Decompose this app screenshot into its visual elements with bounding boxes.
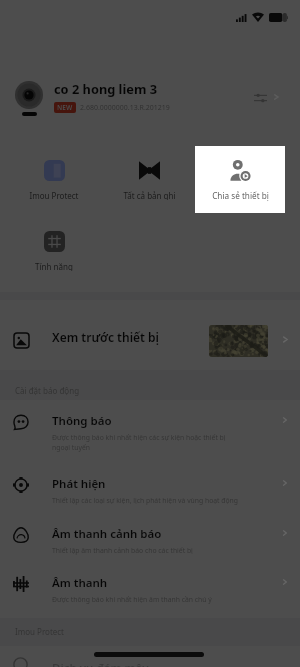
button[interactable]: Âm thanh cảnh báo <box>0 518 300 568</box>
button[interactable]: Xem trước thiết bị <box>0 316 300 364</box>
staticText: Thông báo <box>52 413 112 429</box>
button[interactable]: Âm thanh <box>276 573 294 591</box>
staticText: Tính năng <box>35 261 73 271</box>
button[interactable]: Phát hiện <box>276 474 294 492</box>
button[interactable]: Device settings <box>250 88 270 108</box>
staticText: Âm thanh cảnh báo <box>52 526 162 542</box>
staticText: Được thông báo khi nhất hiện các sự kiện… <box>52 433 226 452</box>
button[interactable]: Tính năng <box>9 219 99 271</box>
button[interactable]: Thông báo <box>0 405 300 467</box>
staticText: Tất cả bản ghi <box>123 190 176 200</box>
button[interactable] <box>0 646 300 667</box>
staticText: Phát hiện <box>52 476 106 492</box>
button[interactable]: Âm thanh <box>0 567 300 617</box>
button[interactable]: Chia sẻ thiết bị <box>195 146 285 213</box>
button[interactable]: Phát hiện <box>0 468 300 518</box>
button[interactable]: Imou Protect <box>9 148 99 200</box>
staticText: Âm thanh <box>52 575 108 591</box>
button[interactable]: Open preview <box>276 330 294 348</box>
staticText: Imou Protect <box>15 626 65 637</box>
staticText: Thiết lập âm thanh cảnh báo cho các thiế… <box>52 546 193 555</box>
staticText: Cài đặt báo động <box>15 385 80 396</box>
staticText: Thiết lập các loại sự kiện, lịch phát hi… <box>52 496 238 505</box>
staticText: Imou Protect <box>29 190 79 200</box>
staticText: 2.680.0000000.13.R.201219 <box>80 103 170 113</box>
staticText: Được thông báo khi nhất hiện âm thanh cầ… <box>52 595 212 604</box>
button[interactable]: Âm thanh cảnh báo <box>276 524 294 542</box>
staticText: co 2 hong liem 3 <box>54 80 158 97</box>
staticText: NEW <box>57 103 73 112</box>
button[interactable]: Thông báo <box>276 411 294 429</box>
button[interactable]: Tất cả bản ghi <box>104 148 194 200</box>
staticText: Xem trước thiết bị <box>52 329 159 345</box>
staticText: Chia sẻ thiết bị <box>212 190 269 201</box>
staticText: Dịch vụ đám mây <box>52 660 149 667</box>
